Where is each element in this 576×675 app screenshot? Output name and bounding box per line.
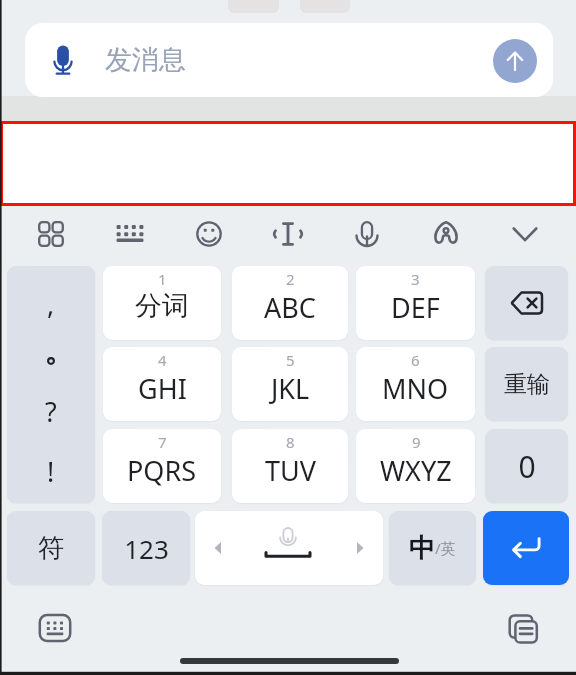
button[interactable]: Emoji — [187, 212, 231, 256]
button[interactable]: 8 — [232, 429, 348, 503]
button[interactable]: 中 — [389, 511, 476, 585]
button[interactable]: 1 — [103, 266, 221, 340]
button[interactable]: Keyboard — [108, 212, 152, 256]
button[interactable]: 0 — [485, 429, 568, 503]
staticText: TUV — [265, 452, 316, 489]
button[interactable]: 123 — [102, 511, 190, 585]
button[interactable]: Handwriting — [424, 212, 468, 256]
staticText: 3 — [411, 269, 420, 289]
staticText: 4 — [158, 350, 167, 370]
staticText: 中 — [409, 532, 435, 565]
button[interactable]: Collapse — [503, 212, 547, 256]
button[interactable] — [195, 511, 383, 585]
staticText: ? — [45, 393, 57, 430]
button[interactable] — [485, 266, 568, 340]
button[interactable]: , — [7, 266, 95, 503]
staticText: /英 — [435, 538, 456, 558]
button[interactable]: 9 — [356, 429, 475, 503]
button[interactable]: 5 — [232, 347, 348, 421]
staticText: ! — [47, 453, 55, 490]
staticText: GHI — [138, 370, 187, 407]
button[interactable] — [483, 511, 569, 585]
button[interactable]: Switch keyboard — [33, 606, 77, 650]
staticText: 符 — [38, 532, 64, 565]
button[interactable]: 4 — [103, 347, 221, 421]
staticText: 分词 — [135, 289, 189, 323]
staticText: 9 — [412, 432, 421, 452]
staticText: 1 — [158, 269, 167, 289]
staticText: 8 — [286, 432, 295, 452]
button[interactable]: Cursor — [266, 212, 310, 256]
staticText: ABC — [264, 289, 316, 326]
button[interactable]: Send — [493, 39, 537, 83]
staticText: WXYZ — [380, 452, 452, 489]
staticText: 2 — [286, 269, 295, 289]
staticText: 发消息 — [105, 43, 186, 77]
button[interactable]: 6 — [356, 347, 475, 421]
staticText: 重输 — [504, 370, 550, 399]
staticText: MNO — [382, 370, 449, 407]
staticText: PQRS — [127, 452, 197, 489]
button[interactable]: 7 — [103, 429, 221, 503]
button[interactable]: 发消息 — [25, 23, 553, 97]
staticText: 7 — [158, 432, 167, 452]
button[interactable]: 3 — [356, 266, 475, 340]
staticText: JKL — [271, 370, 310, 407]
button[interactable]: Apps — [29, 212, 73, 256]
staticText: 5 — [286, 350, 295, 370]
button[interactable]: 符 — [7, 511, 95, 585]
staticText: 0 — [518, 446, 536, 487]
staticText: 123 — [124, 531, 169, 566]
button[interactable]: 2 — [232, 266, 348, 340]
staticText: , — [47, 285, 55, 322]
button[interactable]: 重输 — [485, 347, 568, 421]
button[interactable]: Voice — [345, 212, 389, 256]
button[interactable]: Clipboard — [501, 607, 545, 651]
staticText: 6 — [411, 350, 420, 370]
staticText: DEF — [391, 289, 440, 326]
